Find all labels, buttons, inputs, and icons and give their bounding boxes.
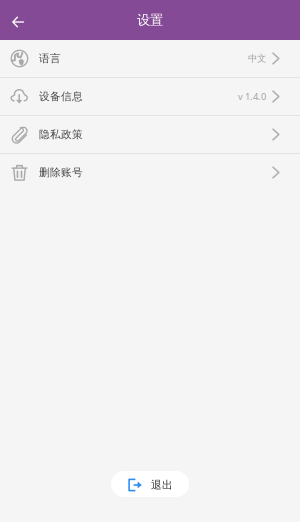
button[interactable]: 退出 [111,471,189,497]
button[interactable]: Back [0,0,36,40]
staticText: 退出 [151,478,173,491]
button[interactable]: 隐私政策 [0,116,300,154]
staticText: 设备信息 [39,90,83,103]
staticText: 中文 [248,53,266,64]
button[interactable]: 语言 [0,40,300,78]
staticText: 设置 [137,12,163,28]
staticText: 隐私政策 [39,128,83,141]
button[interactable]: 设备信息 [0,78,300,116]
staticText: 删除账号 [39,166,83,179]
button[interactable]: 删除账号 [0,154,300,191]
staticText: v 1.4.0 [238,90,266,103]
staticText: 语言 [39,52,61,65]
